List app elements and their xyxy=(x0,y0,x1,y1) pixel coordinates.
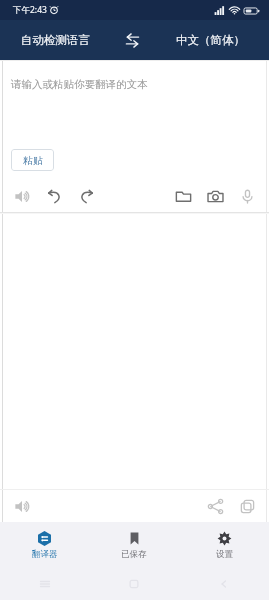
staticText: 中文（简体） xyxy=(176,33,245,47)
staticText: 请输入或粘贴你要翻译的文本 xyxy=(11,78,148,91)
button[interactable]: Redo xyxy=(70,180,102,212)
button[interactable]: Undo xyxy=(38,180,70,212)
button[interactable]: 自动检测语言 xyxy=(0,20,110,60)
button[interactable]: 请输入或粘贴你要翻译的文本 xyxy=(0,61,269,180)
staticText: 设置 xyxy=(216,549,233,560)
staticText: 粘贴 xyxy=(23,154,43,167)
button[interactable]: 设置 xyxy=(179,522,269,568)
button[interactable]: Listen translation xyxy=(6,490,38,522)
button[interactable]: Voice input xyxy=(231,180,263,212)
button[interactable]: 粘贴 xyxy=(11,149,54,171)
staticText: 已保存 xyxy=(121,549,147,560)
staticText: 翻译器 xyxy=(32,549,58,560)
button[interactable]: Swap languages xyxy=(110,20,154,60)
button[interactable]: Camera xyxy=(199,180,231,212)
staticText: 自动检测语言 xyxy=(21,33,90,47)
button[interactable]: Open document xyxy=(167,180,199,212)
button[interactable]: 已保存 xyxy=(89,522,179,568)
button[interactable]: 中文（简体） xyxy=(154,20,266,60)
button[interactable]: Listen xyxy=(6,180,38,212)
button[interactable]: Copy xyxy=(231,490,263,522)
button[interactable]: 翻译器 xyxy=(0,522,89,568)
staticText: 下午2:43 xyxy=(13,4,47,16)
button[interactable]: Share xyxy=(199,490,231,522)
